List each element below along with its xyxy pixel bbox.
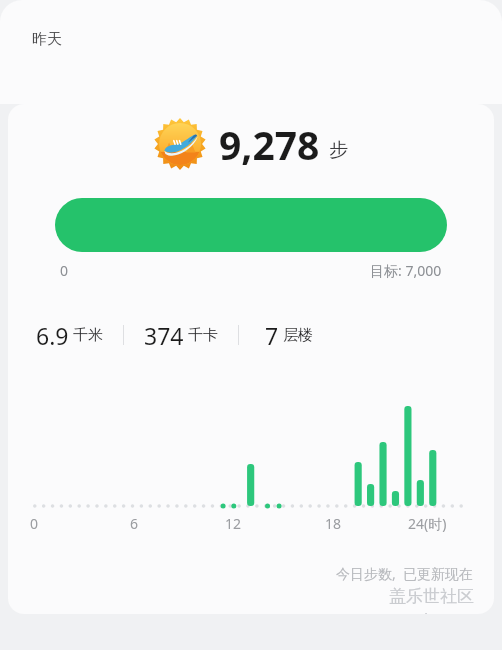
staticText: 0	[60, 261, 69, 280]
other: Achievement badge	[154, 118, 206, 170]
staticText: 步	[329, 138, 348, 162]
staticText: 6	[130, 514, 139, 533]
staticText: 7	[265, 320, 279, 351]
button[interactable]	[55, 198, 447, 252]
staticText: 12	[225, 514, 242, 533]
staticText: 盖乐世社区	[389, 586, 474, 607]
staticText: 6.9	[36, 320, 69, 351]
staticText: 今日步数, 已更新现在	[336, 564, 474, 583]
staticText: 24(时)	[408, 514, 447, 533]
staticText: 层楼	[283, 326, 313, 345]
staticText: 千卡	[188, 326, 218, 345]
staticText: 0	[30, 514, 39, 533]
staticText: 千米	[73, 326, 103, 345]
staticText: 9,278	[219, 118, 320, 171]
staticText: 18	[325, 514, 342, 533]
button[interactable]: 昨天	[0, 0, 502, 104]
staticText: 374	[144, 320, 184, 351]
staticText: 昨天	[32, 30, 62, 49]
staticText: 目标: 7,000	[370, 261, 442, 280]
